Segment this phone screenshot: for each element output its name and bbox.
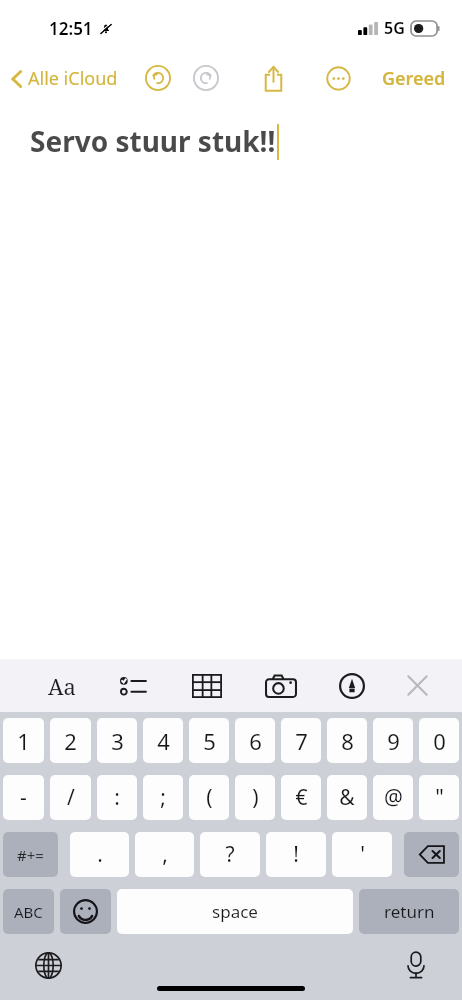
button[interactable]: 3 <box>97 718 137 763</box>
button[interactable]: Camera <box>255 659 307 712</box>
button[interactable]: ) <box>235 775 275 820</box>
staticText: return <box>384 900 435 923</box>
staticText: 0 <box>433 726 446 756</box>
button[interactable]: ; <box>143 775 183 820</box>
staticText: @ <box>384 783 403 812</box>
staticText: , <box>162 840 168 869</box>
button[interactable]: 0 <box>419 718 459 763</box>
staticText: 3 <box>111 726 124 756</box>
staticText: #+= <box>17 845 44 865</box>
button[interactable]: : <box>97 775 137 820</box>
staticText: 4 <box>157 726 170 756</box>
staticText: 6 <box>249 726 262 756</box>
staticText: : <box>114 783 120 812</box>
button[interactable]: Emoji <box>60 889 111 934</box>
button[interactable]: Share <box>252 57 294 99</box>
staticText: Gereed <box>382 66 446 91</box>
button[interactable]: ! <box>266 832 326 877</box>
button[interactable]: 8 <box>327 718 367 763</box>
staticText: € <box>295 783 308 812</box>
staticText: - <box>20 783 27 812</box>
staticText: 2 <box>64 726 77 756</box>
button[interactable]: . <box>70 832 129 877</box>
button[interactable]: 9 <box>373 718 413 763</box>
staticText: Aa <box>48 671 76 701</box>
button[interactable]: return <box>359 889 459 934</box>
staticText: 7 <box>295 726 308 756</box>
staticText: ' <box>360 840 365 869</box>
button[interactable]: 4 <box>143 718 183 763</box>
staticText: ( <box>206 783 213 812</box>
staticText: 5G <box>384 17 405 39</box>
button[interactable]: Aa <box>36 659 88 712</box>
staticText: ! <box>293 840 299 869</box>
button[interactable]: Gereed <box>376 62 452 95</box>
button[interactable]: ? <box>200 832 260 877</box>
button[interactable]: € <box>281 775 321 820</box>
button[interactable]: - <box>3 775 44 820</box>
button[interactable]: 2 <box>50 718 91 763</box>
button[interactable]: @ <box>373 775 413 820</box>
button[interactable]: Insert table <box>181 659 233 712</box>
button[interactable]: Checklist <box>107 659 159 712</box>
button[interactable]: space <box>117 889 353 934</box>
button[interactable]: Dictate <box>396 945 436 985</box>
staticText: Alle iCloud <box>28 66 118 91</box>
staticText: ? <box>225 840 235 869</box>
staticText: ) <box>252 783 259 812</box>
staticText: 9 <box>387 726 400 756</box>
staticText: 12:51 <box>49 17 93 40</box>
staticText: 5 <box>203 726 216 756</box>
button[interactable]: Alle iCloud <box>6 62 122 95</box>
button[interactable]: Change keyboard language <box>28 945 68 985</box>
button[interactable]: ( <box>189 775 229 820</box>
button[interactable]: More options <box>317 57 359 99</box>
button[interactable]: Close keyboard <box>391 659 443 712</box>
button[interactable]: Undo <box>138 58 178 98</box>
button[interactable]: " <box>419 775 459 820</box>
staticText: / <box>67 783 75 812</box>
staticText: " <box>435 783 444 812</box>
staticText: Servo stuur stuk!! <box>30 122 276 160</box>
button[interactable]: 1 <box>3 718 44 763</box>
button[interactable]: ABC <box>3 889 54 934</box>
button[interactable]: / <box>50 775 91 820</box>
staticText: ABC <box>14 902 43 922</box>
staticText: space <box>212 900 258 923</box>
button[interactable]: 6 <box>235 718 275 763</box>
staticText: 1 <box>17 726 30 756</box>
button[interactable]: 5 <box>189 718 229 763</box>
button[interactable]: & <box>327 775 367 820</box>
button[interactable]: Redo <box>186 58 226 98</box>
button[interactable]: 7 <box>281 718 321 763</box>
button[interactable]: Markup <box>326 659 378 712</box>
button[interactable]: ' <box>332 832 392 877</box>
staticText: 8 <box>341 726 354 756</box>
button[interactable]: , <box>135 832 194 877</box>
button[interactable]: #+= <box>3 832 58 877</box>
staticText: & <box>339 783 355 812</box>
button[interactable]: Backspace <box>404 832 459 877</box>
staticText: ; <box>160 783 166 812</box>
staticText: . <box>97 840 103 869</box>
